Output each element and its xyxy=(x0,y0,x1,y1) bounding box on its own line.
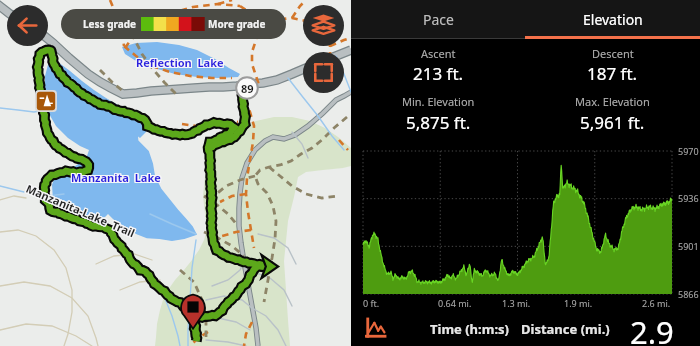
staticText: Reflection Lake xyxy=(137,55,225,70)
staticText: Descent xyxy=(592,46,634,61)
staticText: 1.9 mi. xyxy=(564,297,593,309)
button[interactable]: Elevation xyxy=(525,0,700,39)
staticText: Manzanita-Lake Trail xyxy=(24,181,137,240)
staticText: 89 xyxy=(241,81,254,96)
staticText: 5,961 ft. xyxy=(580,111,645,134)
staticText: Reflection Lake xyxy=(136,54,224,69)
staticText: Reflection Lake xyxy=(137,56,225,71)
staticText: 2.9 xyxy=(630,311,674,346)
staticText: 5866 xyxy=(678,288,699,300)
staticText: Ascent xyxy=(421,46,456,61)
staticText: Manzanita-Lake Trail xyxy=(24,182,138,241)
staticText: Manzanita Lake xyxy=(71,170,161,185)
button[interactable]: Back xyxy=(7,5,48,46)
staticText: Manzanita-Lake Trail xyxy=(23,180,136,240)
button[interactable]: Less grade xyxy=(61,9,286,39)
staticText: 0.64 mi. xyxy=(438,297,472,309)
staticText: Reflection Lake xyxy=(137,54,225,69)
staticText: Manzanita Lake xyxy=(70,171,160,186)
staticText: 5901 xyxy=(678,240,699,252)
staticText: 5970 xyxy=(678,145,699,157)
staticText: Manzanita-Lake Trail xyxy=(23,179,137,239)
button[interactable]: Fit route to screen xyxy=(303,52,344,93)
staticText: Reflection Lake xyxy=(135,54,223,69)
staticText: Manzanita-Lake Trail xyxy=(25,181,138,241)
button[interactable]: Charts xyxy=(366,319,385,338)
staticText: Manzanita-Lake Trail xyxy=(22,181,136,241)
staticText: Manzanita Lake xyxy=(71,169,161,184)
button[interactable]: Pace xyxy=(351,0,525,39)
staticText: Elevation xyxy=(583,10,643,29)
staticText: 5,875 ft. xyxy=(406,111,471,134)
staticText: Manzanita Lake xyxy=(70,170,160,185)
staticText: Min. Elevation xyxy=(402,94,475,109)
staticText: 0 ft. xyxy=(363,297,380,309)
staticText: Reflection Lake xyxy=(135,55,223,70)
staticText: Manzanita Lake xyxy=(70,169,160,184)
staticText: Manzanita Lake xyxy=(71,171,161,186)
staticText: Manzanita Lake xyxy=(72,170,162,185)
staticText: More grade xyxy=(208,17,266,31)
button[interactable]: Map layers xyxy=(303,5,344,46)
staticText: Reflection Lake xyxy=(136,55,224,70)
staticText: Less grade xyxy=(83,17,137,31)
staticText: Reflection Lake xyxy=(136,56,224,71)
staticText: Manzanita-Lake Trail xyxy=(25,180,139,240)
staticText: Reflection Lake xyxy=(135,56,223,71)
staticText: Distance (mi.) xyxy=(521,320,610,338)
staticText: Manzanita Lake xyxy=(72,171,162,186)
staticText: 5936 xyxy=(678,192,699,204)
staticText: Max. Elevation xyxy=(575,94,650,109)
staticText: Pace xyxy=(423,10,454,29)
staticText: 1.3 mi. xyxy=(502,297,531,309)
staticText: 2.6 mi. xyxy=(642,297,671,309)
staticText: 187 ft. xyxy=(587,62,638,85)
staticText: Manzanita Lake xyxy=(72,169,162,184)
staticText: Time (h:m:s) xyxy=(430,320,509,338)
staticText: Manzanita-Lake Trail xyxy=(24,180,138,239)
staticText: Manzanita-Lake Trail xyxy=(23,182,137,241)
staticText: 213 ft. xyxy=(413,62,464,85)
